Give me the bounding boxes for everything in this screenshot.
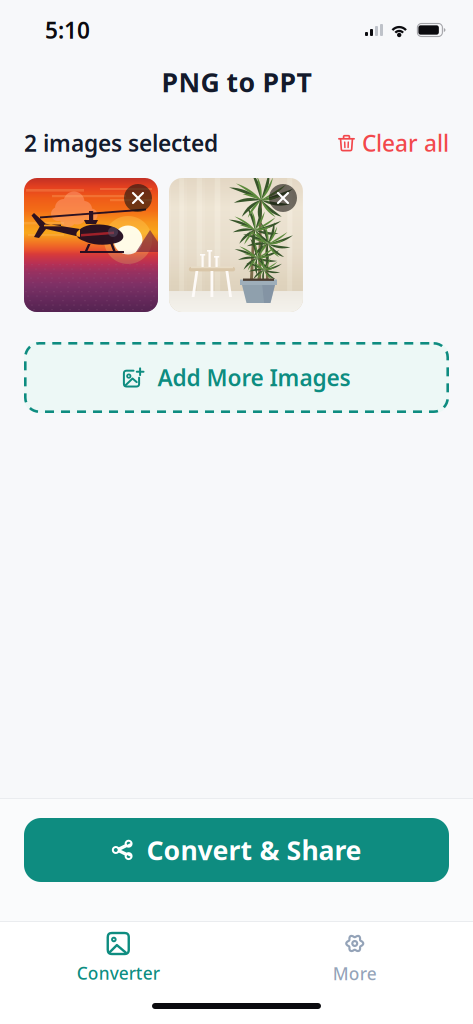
button[interactable]: Converter <box>0 915 236 994</box>
button[interactable]: More <box>236 915 473 995</box>
staticText: Convert & Share <box>146 832 361 868</box>
staticText: More <box>333 962 377 985</box>
staticText: 5:10 <box>45 15 90 45</box>
staticText: Converter <box>77 961 160 984</box>
staticText: Add More Images <box>157 362 350 392</box>
staticText: PNG to PPT <box>161 64 311 100</box>
button[interactable]: Clear all <box>338 128 449 158</box>
button[interactable]: Convert & Share <box>24 818 449 882</box>
staticText: Clear all <box>362 128 449 158</box>
button[interactable]: Remove image <box>124 184 152 212</box>
staticText: 2 images selected <box>24 128 218 158</box>
button[interactable]: Remove image <box>269 184 297 212</box>
button[interactable]: Add More Images <box>24 342 449 413</box>
